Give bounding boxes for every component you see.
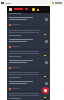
button[interactable]: Alerts xyxy=(32,8,35,11)
button[interactable] xyxy=(7,28,50,49)
button[interactable] xyxy=(7,91,50,100)
button[interactable] xyxy=(7,6,50,27)
button[interactable] xyxy=(7,70,50,91)
button[interactable] xyxy=(7,49,50,70)
button[interactable]: Compose xyxy=(42,87,49,94)
